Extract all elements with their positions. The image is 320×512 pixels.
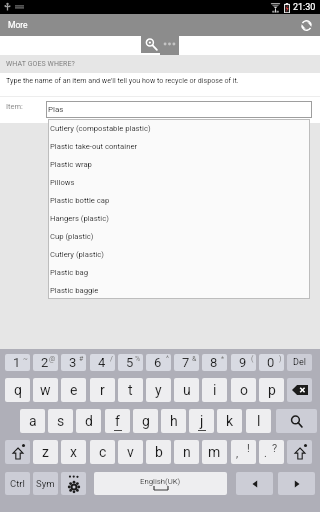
button[interactable]: n	[174, 440, 199, 464]
button[interactable]: 3	[61, 354, 86, 371]
staticText: )	[279, 355, 282, 363]
button[interactable]: t	[118, 378, 143, 402]
staticText: WHAT GOES WHERE?	[6, 60, 76, 68]
button[interactable]: Refresh	[297, 16, 315, 34]
button[interactable]: Shift	[287, 440, 312, 464]
button[interactable]: g	[133, 409, 158, 433]
button[interactable]: Plas	[46, 101, 312, 118]
staticText: 1	[13, 355, 21, 370]
button[interactable]: 6	[146, 354, 171, 371]
button[interactable]: r	[90, 378, 115, 402]
staticText: z	[42, 444, 49, 460]
button[interactable]: Settings	[61, 472, 86, 495]
button[interactable]: b	[146, 440, 171, 464]
staticText: Hangers (plastic)	[50, 214, 109, 223]
button[interactable]: Hangers (plastic)	[48, 209, 310, 227]
button[interactable]: p	[259, 378, 284, 402]
staticText: Cutlery (compostable plastic)	[50, 124, 151, 133]
staticText: 7	[182, 355, 190, 370]
staticText: v	[127, 444, 134, 460]
staticText: *	[221, 355, 225, 363]
button[interactable]: y	[146, 378, 171, 402]
staticText: o	[240, 382, 248, 398]
button[interactable]: e	[61, 378, 86, 402]
staticText: /	[110, 355, 113, 363]
staticText: e	[70, 382, 78, 398]
other: Left	[250, 479, 260, 489]
button[interactable]: Del	[287, 354, 312, 371]
button[interactable]: w	[33, 378, 58, 402]
button[interactable]: Plastic baggie	[48, 281, 310, 299]
button[interactable]: c	[90, 440, 115, 464]
button[interactable]: Plastic bottle cap	[48, 191, 310, 209]
button[interactable]: Plastic bag	[48, 263, 310, 281]
button[interactable]: x	[61, 440, 86, 464]
button[interactable]: z	[33, 440, 58, 464]
button[interactable]: o	[231, 378, 256, 402]
button[interactable]: 1	[5, 354, 30, 371]
button[interactable]: k	[217, 409, 242, 433]
button[interactable]: Cup (plastic)	[48, 227, 310, 245]
button[interactable]: a	[20, 409, 45, 433]
button[interactable]: Cutlery (compostable plastic)	[48, 119, 310, 137]
staticText: i	[213, 382, 217, 398]
button[interactable]: Right	[278, 472, 315, 495]
staticText: m	[208, 444, 221, 460]
other: Battery	[284, 3, 290, 13]
staticText: Plastic wrap	[50, 160, 92, 169]
button[interactable]: ?	[259, 440, 284, 464]
button[interactable]: Search	[141, 35, 179, 53]
button[interactable]: d	[76, 409, 101, 433]
staticText: p	[268, 382, 276, 398]
button[interactable]: f	[105, 409, 130, 433]
button[interactable]: !	[231, 440, 256, 464]
button[interactable]: Cutlery (plastic)	[48, 245, 310, 263]
button[interactable]: l	[246, 409, 271, 433]
button[interactable]: 5	[118, 354, 143, 371]
staticText: Cup (plastic)	[50, 232, 94, 241]
button[interactable]: q	[5, 378, 30, 402]
button[interactable]: i	[202, 378, 227, 402]
staticText: 0	[267, 355, 275, 370]
button[interactable]: Backspace	[287, 378, 312, 402]
button[interactable]: j	[189, 409, 214, 433]
staticText: Plastic take-out container	[50, 142, 138, 151]
button[interactable]: 8	[202, 354, 227, 371]
staticText: k	[226, 413, 234, 429]
staticText: 8	[210, 355, 218, 370]
button[interactable]: 7	[174, 354, 199, 371]
staticText: u	[183, 382, 191, 398]
staticText: ?	[272, 442, 278, 455]
button[interactable]: s	[48, 409, 73, 433]
button[interactable]: 2	[33, 354, 58, 371]
staticText: Del	[293, 357, 306, 368]
staticText: 3	[69, 355, 77, 370]
button[interactable]: m	[202, 440, 227, 464]
button[interactable]: 9	[231, 354, 256, 371]
button[interactable]: Ctrl	[5, 472, 30, 495]
button[interactable]: Search	[276, 409, 317, 433]
button[interactable]: u	[174, 378, 199, 402]
button[interactable]: h	[161, 409, 186, 433]
button[interactable]: Plastic take-out container	[48, 137, 310, 155]
button[interactable]: v	[118, 440, 143, 464]
staticText: .	[264, 447, 267, 460]
staticText: h	[170, 413, 178, 429]
button[interactable]: 0	[259, 354, 284, 371]
button[interactable]: English(UK)	[94, 472, 227, 495]
staticText: w	[40, 382, 51, 398]
staticText: 2	[41, 355, 49, 370]
button[interactable]: Sym	[33, 472, 58, 495]
staticText: Cutlery (plastic)	[50, 250, 104, 259]
button[interactable]: Pillows	[48, 173, 310, 191]
staticText: l	[257, 413, 261, 429]
button[interactable]: Shift	[5, 440, 30, 464]
staticText: ^	[166, 355, 169, 363]
staticText: ,	[236, 447, 239, 460]
button[interactable]: 4	[90, 354, 115, 371]
staticText: y	[155, 382, 162, 398]
button[interactable]: Left	[236, 472, 273, 495]
button[interactable]: Plastic wrap	[48, 155, 310, 173]
other: Search	[144, 37, 158, 51]
staticText: c	[99, 444, 107, 460]
